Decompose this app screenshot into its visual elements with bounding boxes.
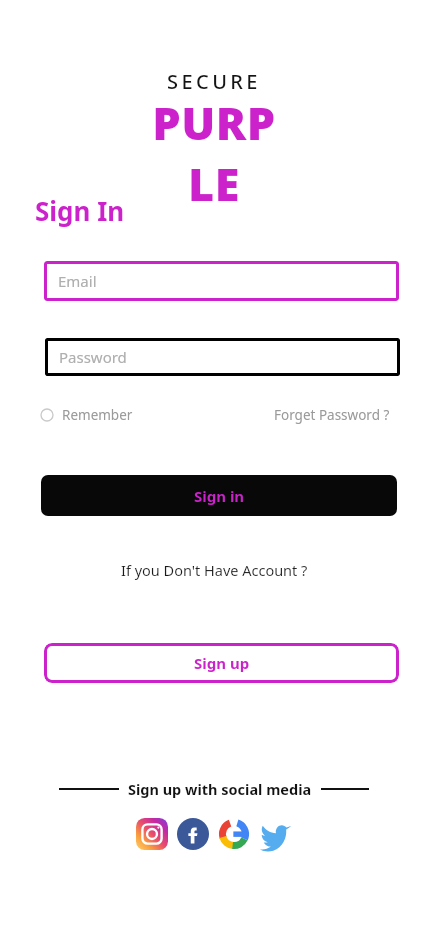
button[interactable]: Password (45, 338, 400, 376)
staticText: SECURE (149, 68, 279, 95)
staticText: Sign In (35, 193, 125, 228)
button[interactable]: Forget Password ? (274, 406, 390, 424)
button[interactable]: Sign up (44, 643, 399, 683)
staticText: Remember (62, 406, 133, 424)
button[interactable]: Remember (40, 406, 133, 424)
button[interactable]: Google (218, 818, 250, 850)
button[interactable]: Email (44, 261, 399, 301)
button[interactable]: Sign in (41, 475, 397, 516)
staticText: PURPLE (149, 92, 279, 214)
staticText: Sign in (194, 486, 245, 506)
button[interactable]: Instagram (136, 818, 168, 850)
staticText: Password (59, 347, 127, 367)
staticText: Sign up with social media (128, 779, 312, 799)
staticText: Forget Password ? (274, 406, 390, 424)
staticText: If you Don't Have Account ? (121, 560, 308, 580)
button[interactable]: Twitter (259, 817, 293, 851)
button[interactable]: Facebook (177, 818, 209, 850)
staticText: Sign up (194, 653, 250, 673)
staticText: Email (58, 271, 97, 291)
